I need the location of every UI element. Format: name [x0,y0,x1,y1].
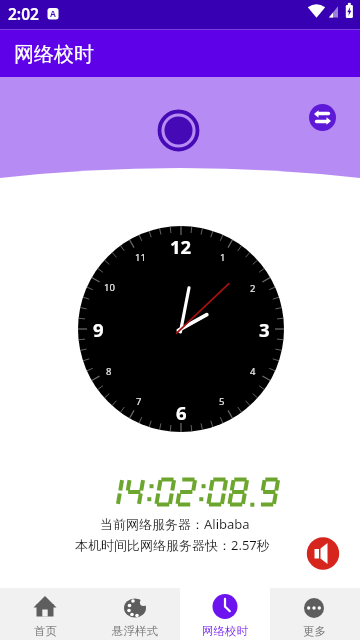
button[interactable] [306,537,339,570]
staticText: 1 [220,251,226,264]
staticText: 6 [176,400,187,425]
button[interactable] [90,588,180,640]
staticText: 2 [250,282,256,295]
staticText: 网络校时 [14,42,94,67]
staticText: 更多 [303,624,326,638]
staticText: 12 [170,234,192,259]
staticText: 当前网络服务器：Alibaba [100,515,250,533]
staticText: 9 [93,317,104,342]
button[interactable] [180,588,270,640]
staticText: 5 [219,395,225,408]
staticText: 4 [250,365,256,378]
button[interactable] [0,588,90,640]
staticText: 11 [135,251,146,264]
staticText: 本机时间比网络服务器快：2.57秒 [75,536,270,554]
staticText: A [50,8,56,20]
staticText: 网络校时 [202,624,248,638]
staticText: 8 [106,365,112,378]
staticText: 悬浮样式 [112,624,158,638]
button[interactable] [270,588,360,640]
staticText: 首页 [34,624,57,638]
staticText: 10 [104,281,115,294]
staticText: 7 [136,395,142,408]
staticText: 3 [259,317,270,342]
button[interactable] [160,112,197,149]
button[interactable] [305,100,340,135]
staticText: 2:02 [8,3,39,23]
